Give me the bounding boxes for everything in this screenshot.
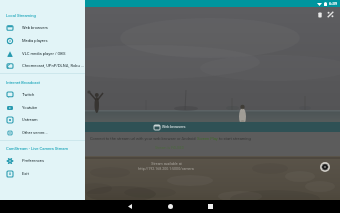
button[interactable]: Recents xyxy=(190,200,230,213)
staticText: Connect to the stream url with your web … xyxy=(90,136,197,141)
button[interactable]: Flash xyxy=(314,9,325,20)
button[interactable]: Preferences xyxy=(0,154,85,167)
staticText: http://192.168.200.1:5000/camera xyxy=(138,167,194,171)
staticText: Chromecast, UPnP/DLNA, Roku ... xyxy=(22,63,85,68)
button[interactable]: Exit xyxy=(0,167,85,180)
staticText: Preferences xyxy=(22,158,45,163)
button[interactable]: Chromecast, UPnP/DLNA, Roku ... xyxy=(0,59,85,72)
staticText: Other server... xyxy=(22,130,48,135)
button[interactable]: Back xyxy=(110,200,150,213)
staticText: Twitch xyxy=(22,92,35,97)
staticText: Stream is PAUSED xyxy=(155,146,185,150)
button[interactable]: Settings xyxy=(320,162,330,172)
staticText: Screen Play xyxy=(197,136,218,141)
staticText: Web browsers xyxy=(162,125,186,129)
button[interactable]: Media players xyxy=(0,34,85,47)
button[interactable]: Web browsers xyxy=(0,21,85,34)
staticText: Web browsers xyxy=(22,25,48,30)
staticText: to start streaming xyxy=(218,136,251,141)
button[interactable]: Youtube xyxy=(0,101,85,114)
button[interactable]: VLC media player / OBS xyxy=(0,47,85,60)
button[interactable]: Switch camera xyxy=(325,9,336,20)
button[interactable]: Home xyxy=(150,200,190,213)
button[interactable]: Ustream xyxy=(0,113,85,126)
staticText: CamStream - Live Camera Stream xyxy=(6,146,69,151)
staticText: VLC media player / OBS xyxy=(22,51,66,56)
staticText: Ustream xyxy=(22,117,38,122)
staticText: Exit xyxy=(22,171,29,176)
staticText: Media players xyxy=(22,38,48,43)
staticText: 6:39 xyxy=(329,1,338,6)
staticText: Internet Broadcast xyxy=(6,80,40,85)
staticText: Local Streaming xyxy=(6,13,36,18)
button[interactable]: Twitch xyxy=(0,88,85,101)
button[interactable]: Web browsers xyxy=(0,122,340,132)
staticText: Youtube xyxy=(22,105,38,110)
button[interactable]: Other server... xyxy=(0,126,85,139)
staticText: Stream available at xyxy=(151,162,182,166)
